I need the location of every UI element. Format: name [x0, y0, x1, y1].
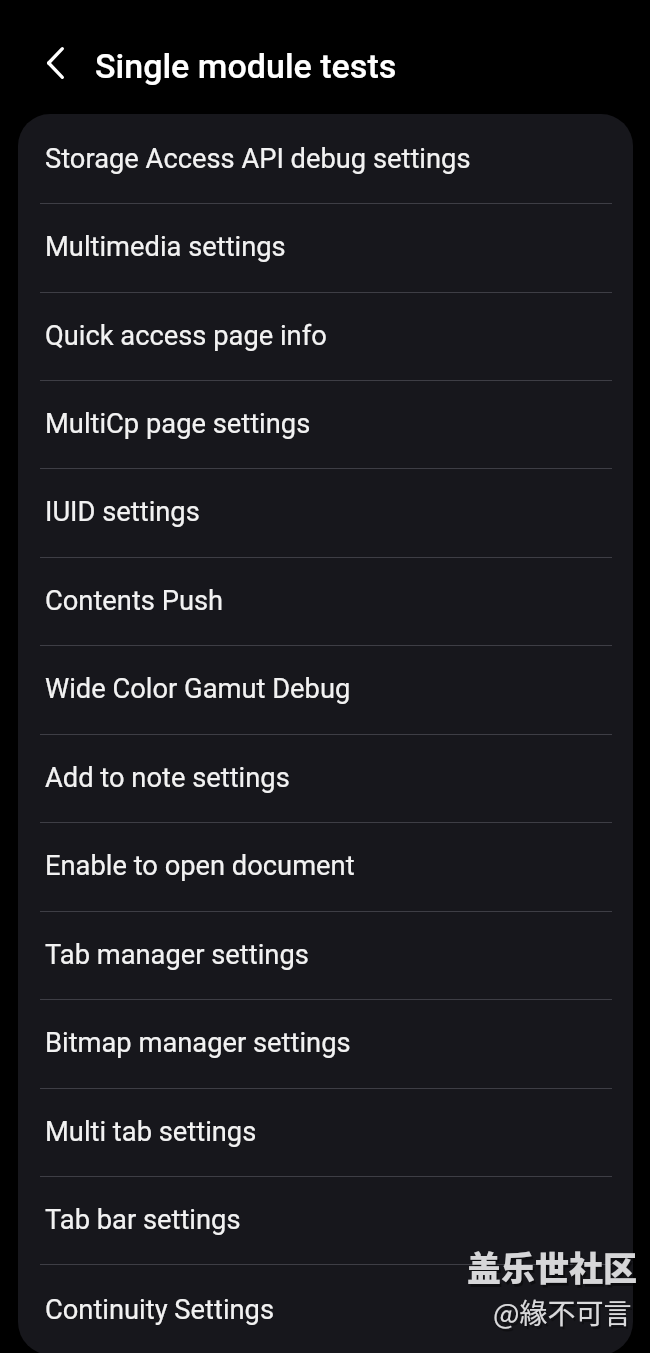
staticText: Continuity Settings [45, 1294, 275, 1326]
staticText: @緣不可言 [493, 1292, 632, 1333]
staticText: Single module tests [95, 46, 397, 86]
staticText: Storage Access API debug settings [45, 143, 471, 175]
staticText: Add to note settings [45, 762, 290, 794]
button[interactable]: Wide Color Gamut Debug [18, 645, 633, 733]
staticText: Tab bar settings [45, 1204, 241, 1236]
staticText: Wide Color Gamut Debug [45, 673, 351, 705]
button[interactable]: Back [32, 39, 79, 86]
staticText: Multi tab settings [45, 1116, 257, 1148]
staticText: Tab manager settings [45, 939, 309, 971]
button[interactable]: MultiCp page settings [18, 380, 633, 468]
button[interactable]: Add to note settings [18, 734, 633, 822]
button[interactable]: Multimedia settings [18, 203, 633, 291]
staticText: MultiCp page settings [45, 408, 311, 440]
staticText: @緣不可言 [495, 1295, 634, 1336]
button[interactable]: Enable to open document [18, 822, 633, 910]
button[interactable]: Quick access page info [18, 292, 633, 380]
button[interactable]: IUID settings [18, 468, 633, 556]
button[interactable]: Bitmap manager settings [18, 999, 633, 1087]
staticText: 盖乐世社区 [469, 1245, 639, 1294]
button[interactable]: Multi tab settings [18, 1088, 633, 1176]
staticText: Contents Push [45, 585, 224, 617]
staticText: Enable to open document [45, 850, 355, 882]
button[interactable]: Contents Push [18, 557, 633, 645]
button[interactable]: Storage Access API debug settings [18, 114, 633, 203]
staticText: Quick access page info [45, 320, 327, 352]
button[interactable]: Tab bar settings [18, 1176, 633, 1264]
button[interactable]: Tab manager settings [18, 911, 633, 999]
staticText: Bitmap manager settings [45, 1027, 351, 1059]
staticText: IUID settings [45, 496, 200, 528]
staticText: Multimedia settings [45, 231, 286, 263]
staticText: 盖乐世社区 [467, 1242, 637, 1291]
button[interactable]: Continuity Settings [18, 1264, 633, 1353]
